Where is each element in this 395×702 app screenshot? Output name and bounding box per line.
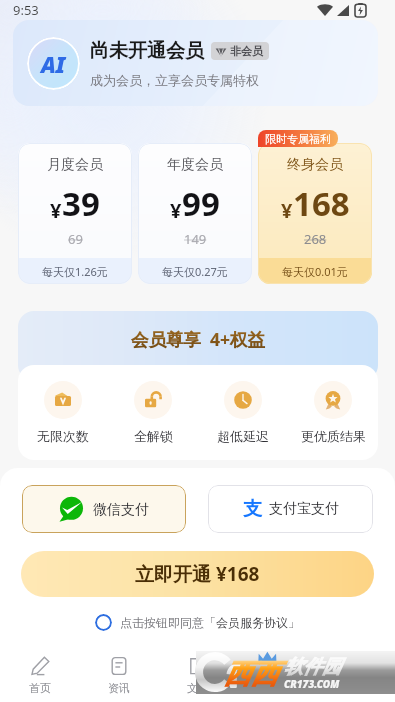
staticText: 成为会员，立享会员专属特权 [90, 72, 259, 88]
staticText: 文件 [187, 681, 209, 695]
staticText: 9:53 [13, 1, 39, 19]
button[interactable]: 年度会员 [138, 143, 252, 284]
staticText: 首页 [29, 681, 51, 695]
staticText: 非会员 [230, 44, 263, 58]
staticText: 每天仅0.01元 [282, 264, 348, 279]
staticText: 会员尊享 4+权益 [131, 327, 266, 351]
staticText: 微信支付 [93, 501, 149, 519]
button[interactable]: 会员 [237, 653, 316, 698]
button[interactable]: 终身会员 [258, 143, 372, 284]
button[interactable]: 更优质结果 [288, 381, 378, 444]
button[interactable]: AI [13, 20, 378, 106]
staticText: ¥ [281, 197, 293, 224]
button[interactable]: 月度会员 [18, 143, 132, 284]
staticText: 每天仅1.26元 [42, 264, 108, 279]
button[interactable]: 超低延迟 [198, 381, 288, 444]
button[interactable]: 微信支付 [22, 485, 186, 533]
staticText: 月度会员 [47, 156, 103, 174]
staticText: 支付宝支付 [269, 500, 339, 518]
staticText: 全解锁 [134, 428, 173, 444]
staticText: 限时专属福利 [265, 132, 331, 146]
staticText: 软件园 [284, 655, 341, 679]
staticText: ¥ [170, 197, 182, 224]
staticText: 168 [293, 181, 350, 226]
button[interactable]: 全解锁 [108, 381, 198, 444]
button[interactable]: 资讯 [79, 653, 158, 698]
staticText: 终身会员 [287, 156, 343, 174]
button[interactable]: 我的 [316, 653, 395, 698]
staticText: 268 [304, 230, 327, 248]
staticText: 立即开通 ¥168 [135, 561, 260, 587]
staticText: 超低延迟 [217, 428, 269, 444]
staticText: AI [41, 49, 66, 79]
button[interactable]: 立即开通 ¥168 [21, 551, 374, 597]
staticText: 会员 [266, 681, 288, 695]
staticText: 西西 [224, 657, 278, 691]
staticText: 无限次数 [37, 428, 89, 444]
button[interactable]: 文件 [158, 653, 237, 698]
button[interactable]: 支 [208, 485, 373, 533]
staticText: 尚未开通会员 [90, 39, 204, 63]
staticText: 年度会员 [167, 156, 223, 174]
button[interactable]: 「会员服务协议」 [204, 615, 300, 630]
staticText: 69 [68, 230, 83, 248]
staticText: 资讯 [108, 681, 130, 695]
staticText: 更优质结果 [301, 428, 366, 444]
staticText: 支 [243, 497, 262, 521]
staticText: 我的 [345, 681, 367, 695]
staticText: ¥ [50, 197, 62, 224]
staticText: 每天仅0.27元 [162, 264, 228, 279]
staticText: 149 [184, 230, 207, 248]
staticText: 99 [182, 181, 220, 226]
staticText: 点击按钮即同意 [120, 615, 204, 630]
staticText: 39 [62, 181, 100, 226]
staticText: CR173.COM [284, 677, 340, 691]
button[interactable]: Agree [95, 614, 112, 631]
button[interactable]: 无限次数 [18, 381, 108, 444]
button[interactable]: 首页 [0, 653, 79, 698]
